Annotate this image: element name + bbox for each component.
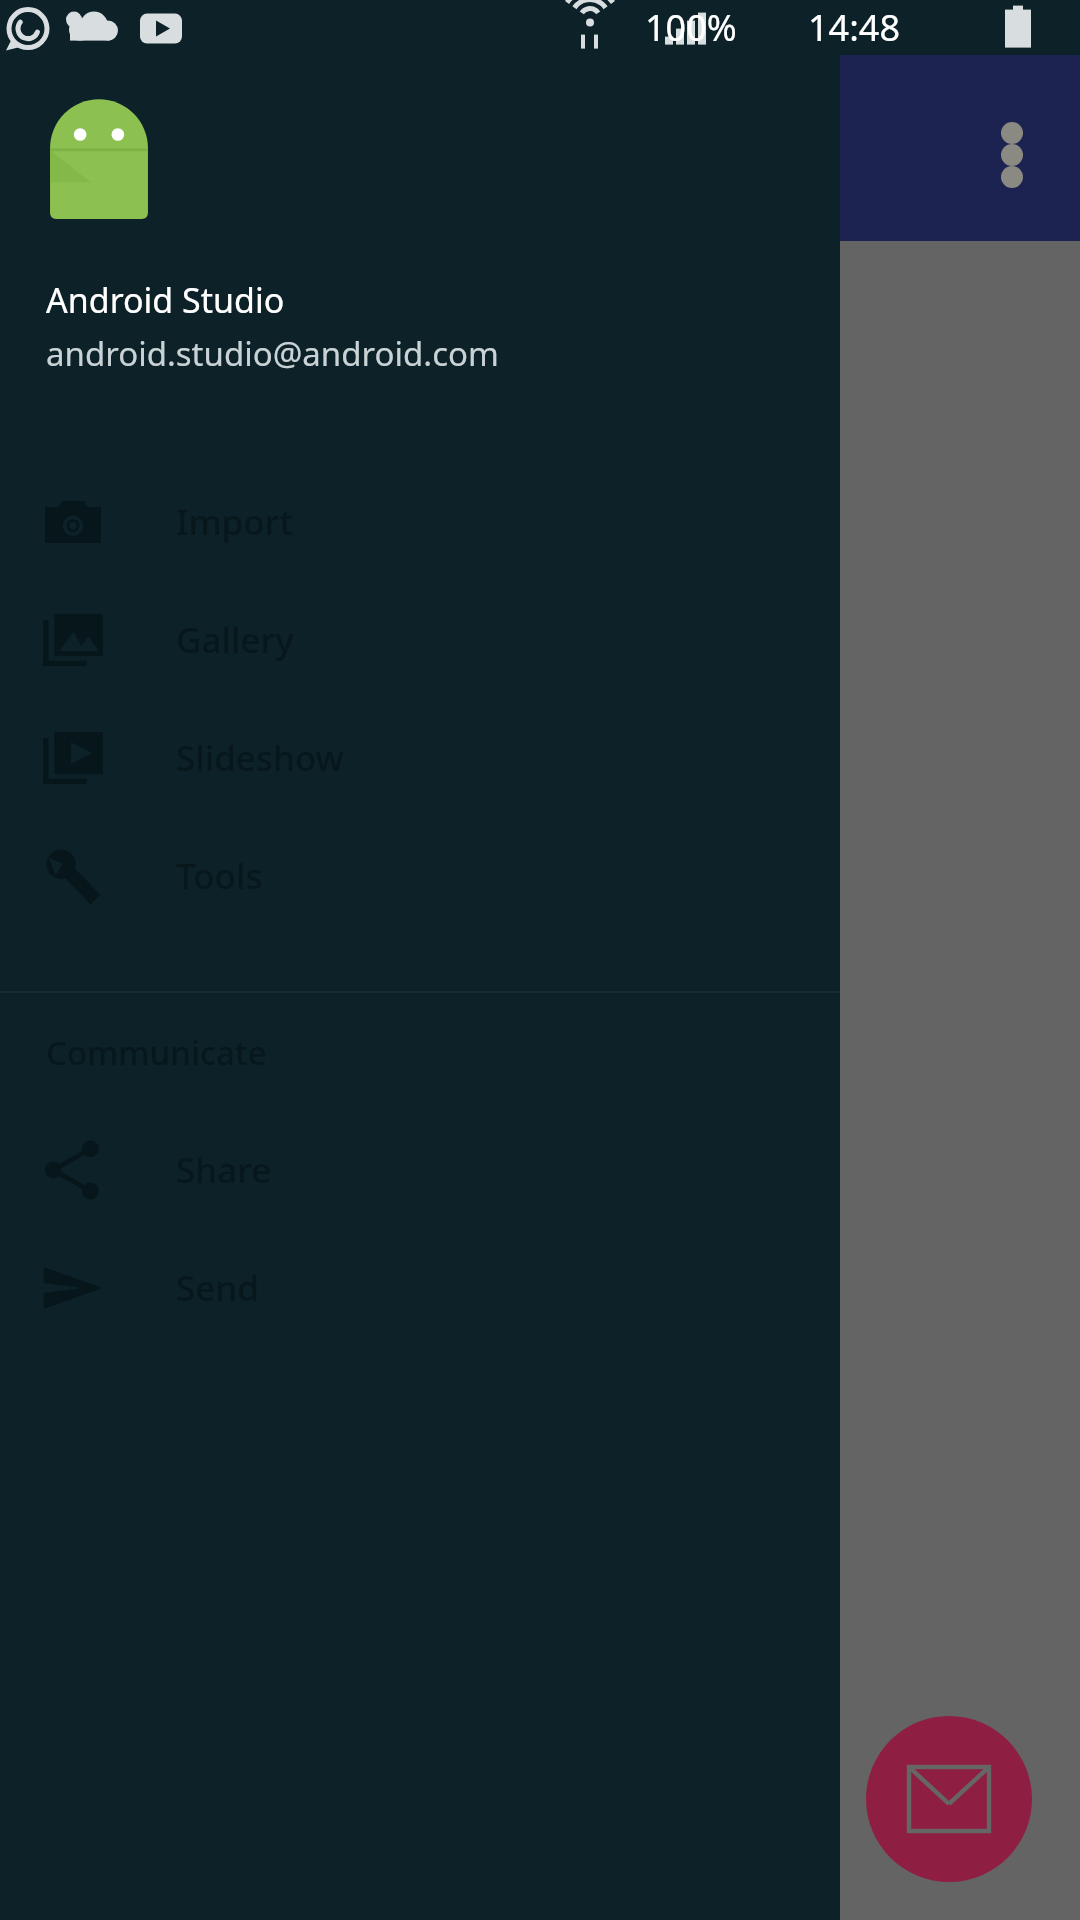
staticText: Send — [176, 1264, 259, 1312]
staticText: Import — [176, 498, 293, 546]
staticText: android.studio@android.com — [46, 331, 499, 376]
staticText: Share — [176, 1146, 272, 1194]
button[interactable]: Send email — [866, 1716, 1032, 1882]
staticText: Gallery — [176, 616, 294, 664]
staticText: 14:48 — [808, 3, 901, 52]
staticText: Communicate — [46, 1030, 267, 1075]
button[interactable]: More options — [962, 105, 1062, 205]
staticText: Slideshow — [176, 734, 344, 782]
staticText: 100% — [645, 3, 737, 52]
staticText: Tools — [176, 852, 263, 900]
staticText: Android Studio — [46, 277, 285, 323]
